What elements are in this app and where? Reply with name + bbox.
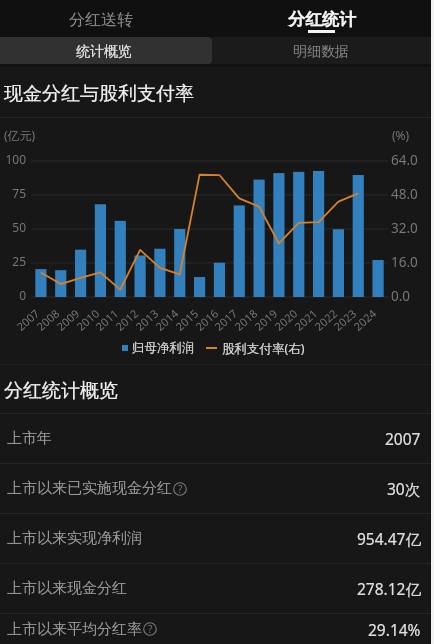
staticText: 2016 — [192, 305, 222, 334]
staticText: 2013 — [132, 305, 162, 334]
staticText: 上市以来现金分红 — [7, 579, 127, 598]
button[interactable]: 上市以来实现净利润 — [0, 514, 434, 563]
staticText: 分红送转 — [69, 10, 133, 30]
button[interactable]: 上市以来现金分红 — [0, 564, 434, 613]
staticText: 64.0 — [391, 151, 418, 167]
staticText: 48.0 — [391, 185, 418, 201]
staticText: 现金分红与股利支付率 — [4, 82, 194, 106]
staticText: 2010 — [73, 305, 103, 334]
staticText: 30次 — [387, 478, 421, 499]
staticText: 上市年 — [7, 429, 52, 448]
staticText: 2021 — [291, 305, 321, 334]
staticText: 归母净利润 — [132, 340, 195, 356]
staticText: 上市以来平均分红率 — [7, 620, 142, 639]
button[interactable]: 上市以来已实施现金分红 — [0, 464, 434, 513]
staticText: 2024 — [350, 305, 380, 334]
staticText: 2014 — [152, 305, 182, 334]
other: 说明 — [143, 622, 157, 636]
staticText: 上市以来已实施现金分红 — [7, 479, 172, 498]
button[interactable]: 上市以来平均分红率 — [0, 614, 434, 644]
staticText: (亿元) — [4, 127, 36, 143]
staticText: 32.0 — [391, 219, 418, 235]
staticText: 2011 — [92, 305, 122, 334]
staticText: 2007 — [385, 428, 421, 449]
button[interactable]: 明细数据 — [212, 37, 434, 64]
staticText: 股利支付率(右) — [222, 340, 305, 357]
staticText: 2008 — [33, 305, 63, 334]
staticText: 2018 — [231, 305, 261, 334]
button[interactable]: 统计概览 — [0, 37, 212, 64]
other: 说明 — [173, 482, 187, 496]
button[interactable]: 分红统计 — [217, 0, 434, 37]
staticText: 0 — [19, 287, 26, 303]
staticText: 2015 — [172, 305, 202, 334]
staticText: 明细数据 — [293, 43, 349, 61]
staticText: 统计概览 — [76, 43, 132, 61]
staticText: ? — [148, 622, 153, 636]
button[interactable]: 上市年 — [0, 414, 434, 463]
staticText: 0.0 — [391, 287, 411, 303]
staticText: 2023 — [330, 305, 360, 334]
staticText: (%) — [392, 127, 410, 143]
staticText: 分红统计概览 — [4, 379, 118, 403]
staticText: 2022 — [311, 305, 341, 334]
staticText: 100 — [5, 151, 26, 167]
staticText: 2017 — [211, 305, 241, 334]
staticText: 50 — [12, 219, 26, 235]
button[interactable]: 分红送转 — [0, 0, 217, 37]
staticText: 2012 — [112, 305, 142, 334]
staticText: 2009 — [53, 305, 83, 334]
staticText: 278.12亿 — [357, 578, 421, 599]
staticText: 25 — [12, 253, 26, 269]
staticText: 16.0 — [391, 253, 418, 269]
staticText: 29.14% — [368, 619, 421, 640]
staticText: ? — [178, 482, 183, 496]
staticText: 2020 — [271, 305, 301, 334]
staticText: 954.47亿 — [357, 528, 421, 549]
staticText: 2019 — [251, 305, 281, 334]
staticText: 上市以来实现净利润 — [7, 529, 142, 548]
staticText: 分红统计 — [288, 9, 356, 30]
staticText: 75 — [12, 185, 26, 201]
staticText: 2007 — [13, 305, 43, 334]
